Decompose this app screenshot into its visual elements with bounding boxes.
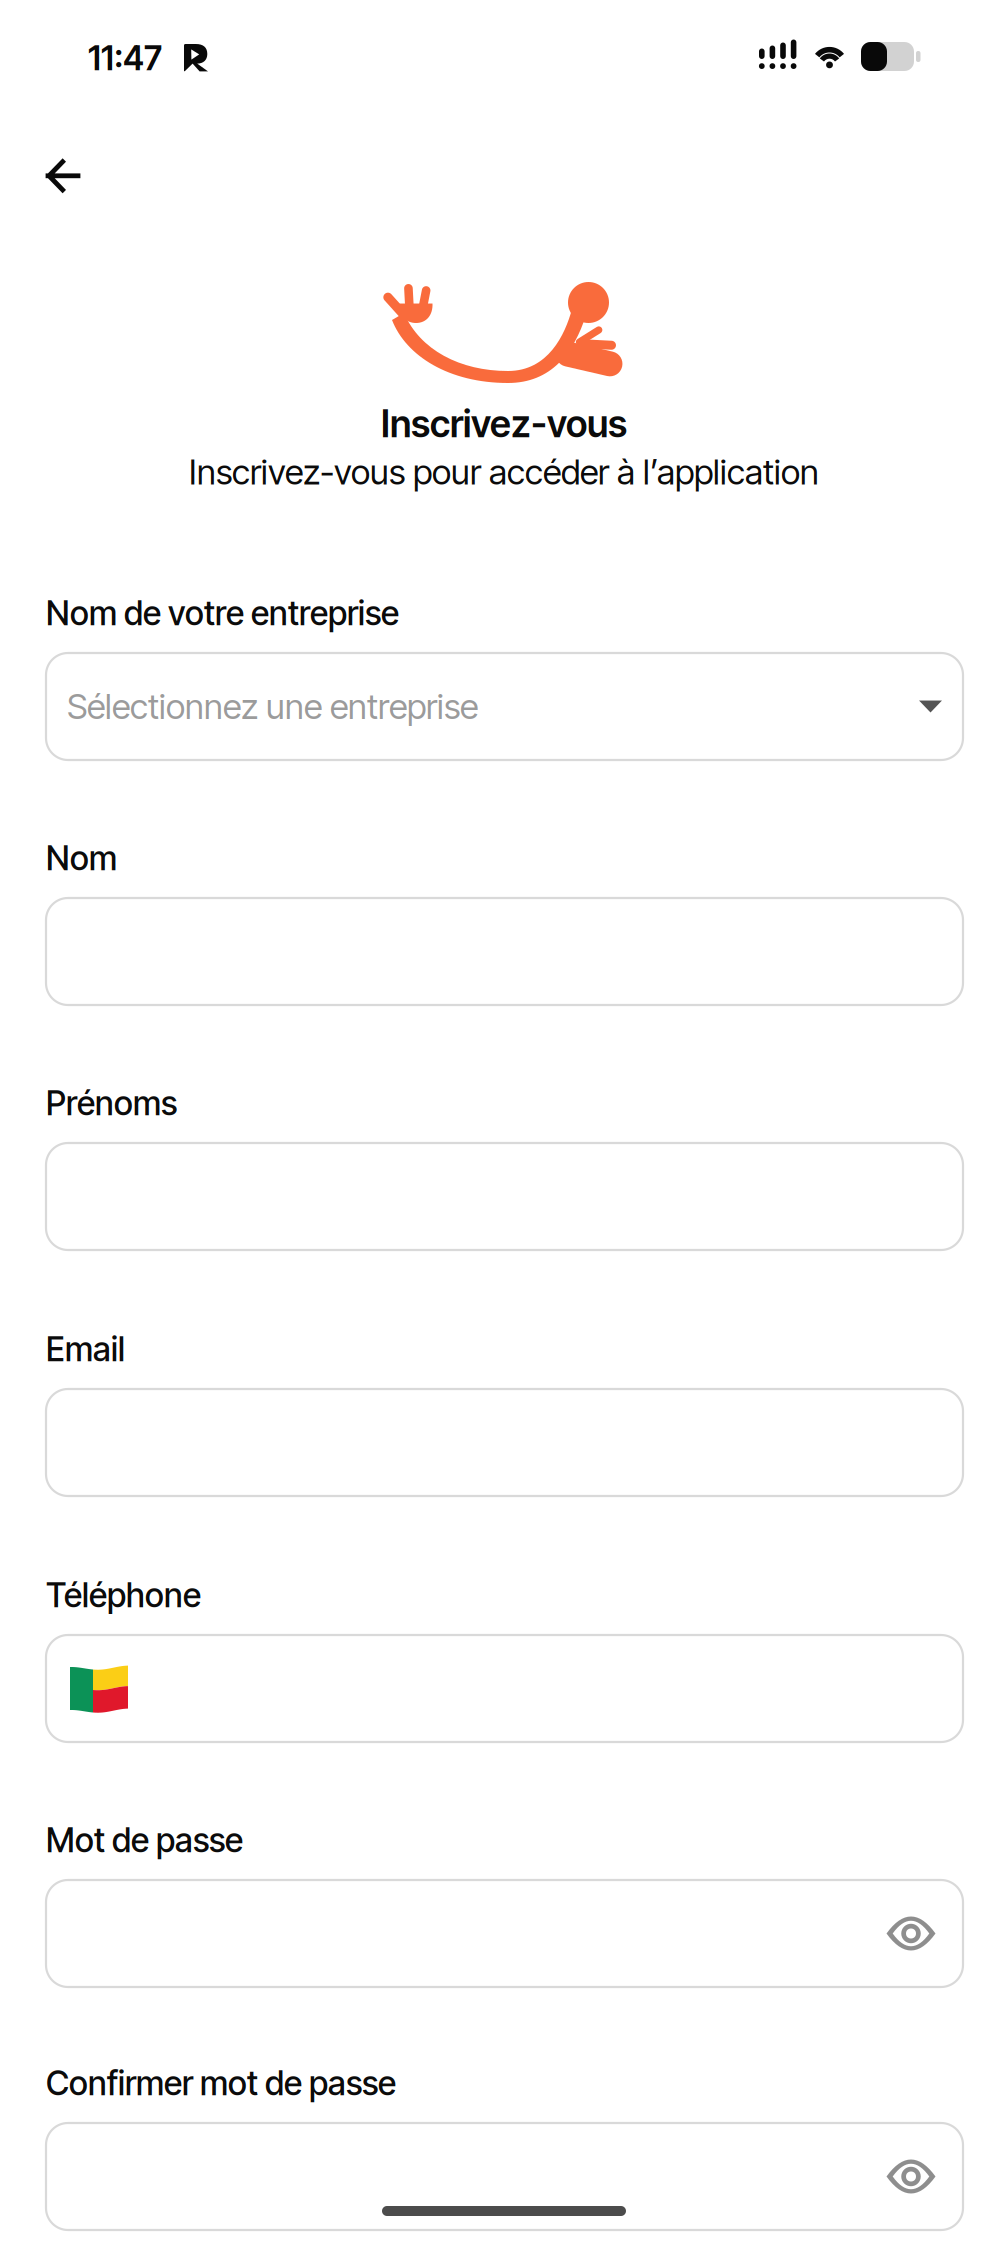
- staticText: Email: [46, 1329, 125, 1369]
- staticText: Nom de votre entreprise: [46, 593, 399, 633]
- staticText: Inscrivez-vous: [381, 401, 627, 446]
- button[interactable]: Sélectionnez une entreprise: [46, 653, 963, 760]
- button[interactable]: Afficher le mot de passe: [881, 1903, 941, 1963]
- staticText: Inscrivez-vous pour accéder à l’applicat…: [189, 451, 819, 493]
- staticText: 11:47: [88, 38, 162, 78]
- staticText: Sélectionnez une entreprise: [67, 685, 478, 727]
- staticText: Téléphone: [46, 1575, 201, 1615]
- staticText: Nom: [46, 838, 117, 878]
- staticText: Confirmer mot de passe: [46, 2063, 396, 2103]
- staticText: Prénoms: [46, 1083, 177, 1123]
- button[interactable]: Retour: [33, 146, 93, 206]
- staticText: Mot de passe: [46, 1820, 243, 1860]
- button[interactable]: Afficher la confirmation du mot de passe: [881, 2146, 941, 2206]
